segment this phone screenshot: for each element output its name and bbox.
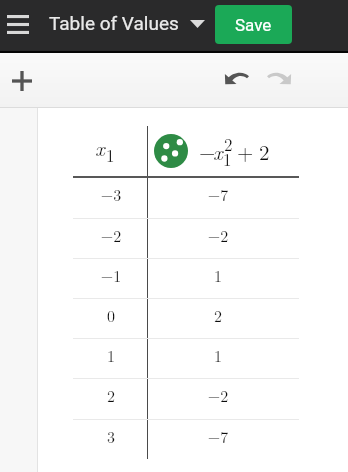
button[interactable]: −3 <box>75 177 147 217</box>
staticText: 1 <box>173 344 263 367</box>
staticText: −2 <box>173 224 263 247</box>
button[interactable]: x <box>74 130 146 175</box>
button[interactable]: −1 <box>75 258 147 298</box>
button[interactable]: 1 <box>173 338 263 378</box>
staticText: − <box>199 136 216 166</box>
button[interactable]: −7 <box>173 419 263 459</box>
button[interactable]: Undo <box>216 60 255 100</box>
button[interactable]: 1 <box>173 258 263 298</box>
staticText: 2 <box>75 384 147 407</box>
staticText: Save <box>235 15 272 35</box>
button[interactable]: Redo <box>259 60 298 100</box>
staticText: −7 <box>173 425 263 448</box>
staticText: x <box>213 136 223 166</box>
staticText: 3 <box>75 425 147 448</box>
staticText: 2 <box>173 304 263 327</box>
button[interactable]: 3 <box>75 419 147 459</box>
button[interactable]: −2 <box>173 218 263 258</box>
button[interactable]: Menu <box>0 0 38 52</box>
button[interactable]: 0 <box>75 298 147 338</box>
button[interactable]: 2 <box>173 298 263 338</box>
staticText: 1 <box>173 264 263 287</box>
button[interactable]: −2 <box>173 378 263 418</box>
button[interactable]: 1 <box>75 338 147 378</box>
staticText: −3 <box>75 183 147 206</box>
staticText: 1 <box>223 147 232 171</box>
staticText: 1 <box>106 143 115 167</box>
button[interactable]: Save <box>215 5 292 44</box>
staticText: 2 <box>224 132 233 156</box>
button[interactable]: −7 <box>173 177 263 217</box>
button[interactable]: Add expression <box>2 53 38 107</box>
button[interactable]: 2 <box>75 378 147 418</box>
staticText: 1 <box>75 344 147 367</box>
staticText: + <box>237 136 254 166</box>
staticText: −2 <box>173 384 263 407</box>
staticText: −2 <box>75 224 147 247</box>
button[interactable]: Table of Values <box>44 0 210 52</box>
staticText: −1 <box>75 264 147 287</box>
button[interactable]: − <box>150 130 297 174</box>
staticText: 0 <box>75 304 147 327</box>
button[interactable]: −2 <box>75 218 147 258</box>
staticText: x <box>95 132 105 162</box>
staticText: 2 <box>259 136 270 166</box>
staticText: Table of Values <box>49 12 179 34</box>
staticText: −7 <box>173 183 263 206</box>
